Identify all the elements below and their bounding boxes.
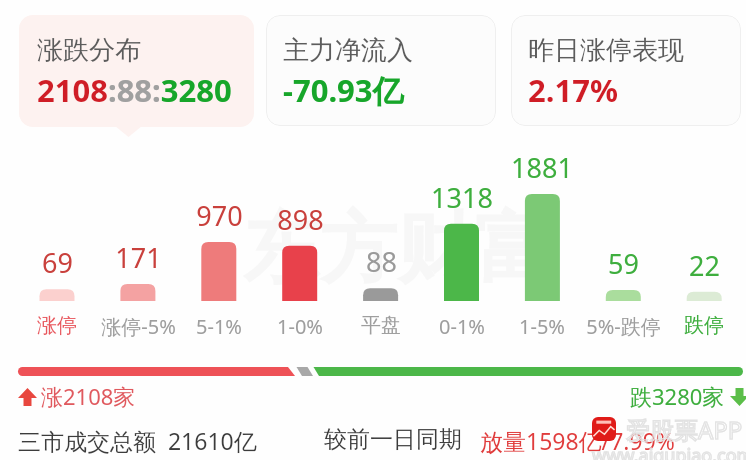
staticText: 970 <box>196 197 243 234</box>
staticText: 5-1% <box>196 313 242 340</box>
staticText: 涨停-5% <box>101 313 176 340</box>
staticText: 三市成交总额 21610亿 <box>18 425 257 456</box>
staticText: 东方财富 <box>243 201 551 298</box>
staticText: 涨2108家 <box>41 381 136 411</box>
staticText: 88 <box>366 243 397 280</box>
staticText: 898 <box>277 201 324 238</box>
staticText: 涨跌分布 <box>37 34 141 67</box>
staticText: 1-5% <box>519 313 565 340</box>
button[interactable]: 跌3280家 <box>630 381 746 411</box>
button[interactable]: 主力净流入 <box>266 15 496 126</box>
staticText: 59 <box>608 245 639 282</box>
staticText: 22 <box>689 247 720 284</box>
staticText: 1-0% <box>277 313 323 340</box>
other: Advancing <box>18 388 37 406</box>
button[interactable]: 爱股票APP <box>592 417 616 441</box>
button[interactable]: Advancing <box>18 381 136 411</box>
staticText: 5%-跌停 <box>586 313 661 340</box>
staticText: 2.17% <box>528 69 618 111</box>
staticText: 涨停 <box>37 313 77 338</box>
button[interactable]: 涨跌分布 <box>19 15 254 127</box>
staticText: 69 <box>42 244 73 281</box>
staticText: 爱股票APP <box>626 413 743 446</box>
staticText: 1318 <box>431 179 493 216</box>
staticText: 昨日涨停表现 <box>528 34 684 67</box>
staticText: 1881 <box>511 149 573 186</box>
staticText: 跌3280家 <box>630 381 725 411</box>
staticText: 主力净流入 <box>283 34 413 67</box>
staticText: 较前一日同期 <box>324 425 462 454</box>
staticText: 2108:88:3280 <box>37 69 232 111</box>
staticText: 0-1% <box>439 313 485 340</box>
other: Declining <box>730 388 746 406</box>
staticText: 171 <box>115 239 162 276</box>
button[interactable]: 昨日涨停表现 <box>511 15 741 126</box>
staticText: 放量1598亿/7.99% <box>480 425 675 456</box>
staticText: 平盘 <box>361 313 401 338</box>
staticText: www.aigupiao.com <box>592 443 746 460</box>
staticText: -70.93亿 <box>283 69 404 111</box>
staticText: 跌停 <box>684 313 724 338</box>
